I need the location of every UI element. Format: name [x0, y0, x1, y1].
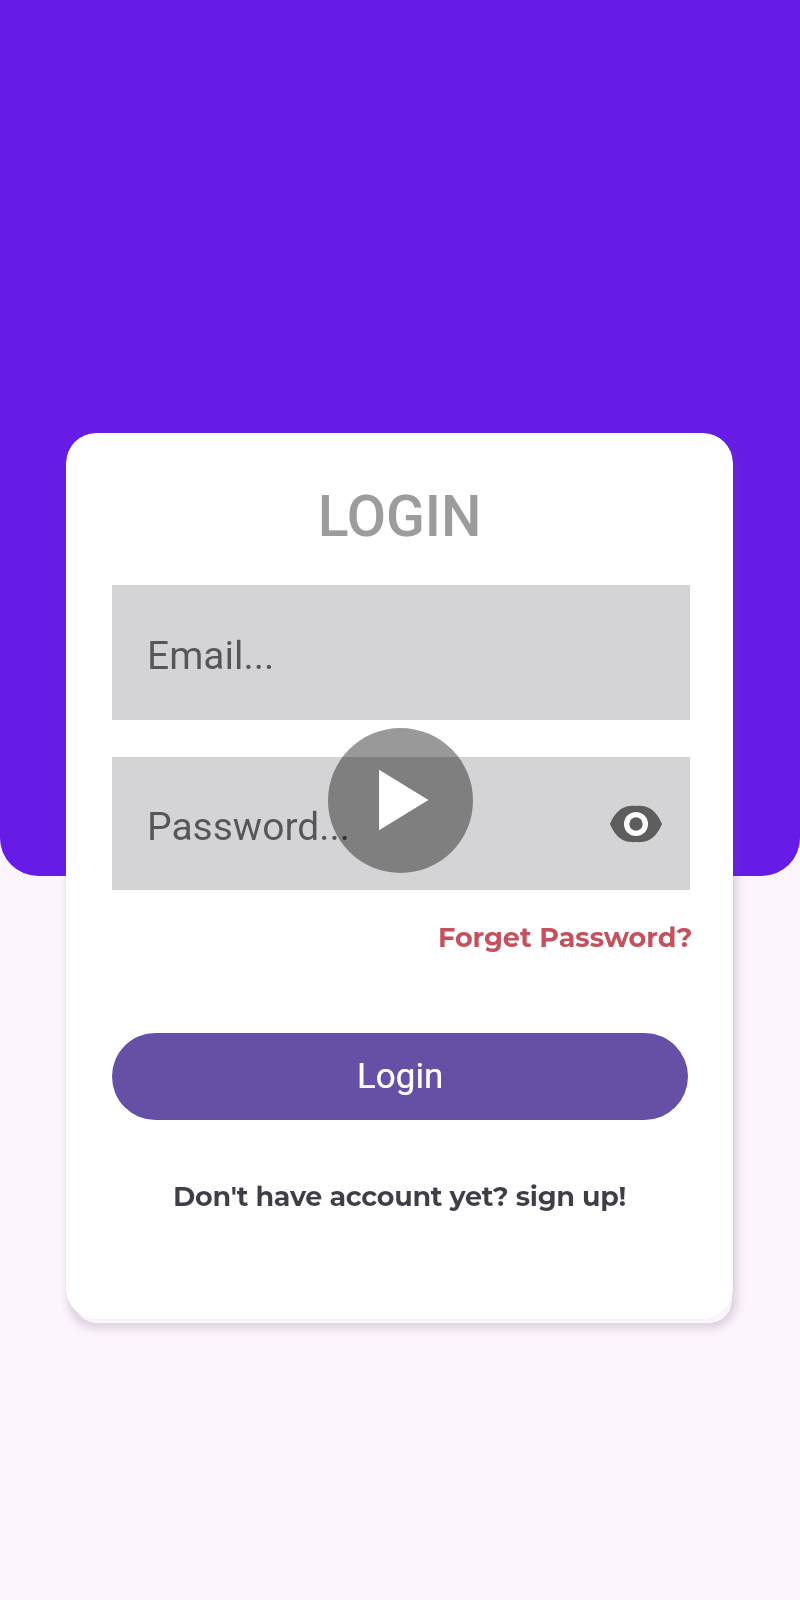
staticText: Password...	[147, 804, 351, 850]
button[interactable]: Password...	[112, 757, 690, 890]
button[interactable]: Don't have account yet? sign up!	[66, 1170, 733, 1222]
staticText: Email...	[147, 633, 275, 679]
button[interactable]: Play	[328, 728, 473, 873]
button[interactable]: Show password	[608, 796, 664, 852]
staticText: Forget Password?	[438, 921, 693, 954]
button[interactable]: Email...	[112, 585, 690, 720]
button[interactable]: Forget Password?	[393, 909, 693, 965]
button[interactable]: Login	[112, 1033, 688, 1120]
staticText: Don't have account yet? sign up!	[173, 1180, 627, 1213]
staticText: LOGIN	[66, 483, 733, 550]
staticText: Login	[357, 1056, 444, 1097]
